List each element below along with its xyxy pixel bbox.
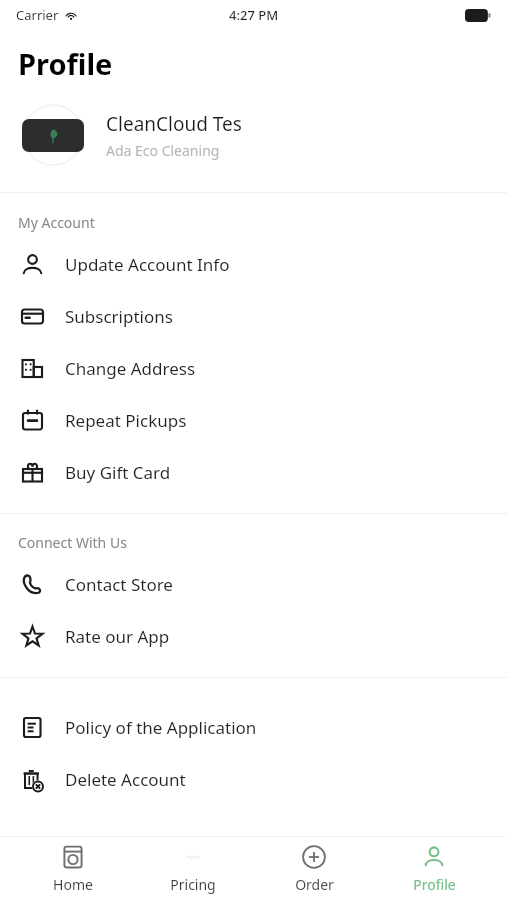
button[interactable]: Home [25, 840, 121, 898]
button[interactable]: Update Account Info [0, 238, 507, 290]
staticText: Order [295, 875, 334, 894]
staticText: Delete Account [65, 768, 186, 791]
staticText: Profile [413, 875, 456, 894]
button[interactable]: Delete Account [0, 753, 507, 805]
button[interactable]: Buy Gift Card [0, 446, 507, 498]
staticText: Repeat Pickups [65, 409, 187, 432]
button[interactable]: Order [266, 840, 362, 898]
button[interactable]: Pricing [145, 840, 241, 898]
button[interactable]: Contact Store [0, 558, 507, 610]
button[interactable]: Profile [386, 840, 482, 898]
staticText: CleanCloud Tes [106, 111, 242, 137]
staticText: Pricing [170, 875, 216, 894]
staticText: Buy Gift Card [65, 461, 171, 484]
staticText: Profile [18, 44, 113, 83]
staticText: Change Address [65, 357, 196, 380]
button[interactable]: Rate our App [0, 610, 507, 662]
staticText: Rate our App [65, 625, 170, 648]
button[interactable]: CleanCloud Tes [0, 96, 507, 174]
staticText: 4:27 PM [229, 6, 279, 24]
staticText: Contact Store [65, 573, 173, 596]
staticText: Carrier [16, 6, 59, 24]
staticText: Connect With Us [18, 533, 127, 552]
button[interactable]: Policy of the Application [0, 701, 507, 753]
staticText: Ada Eco Cleaning [106, 141, 220, 160]
button[interactable]: Repeat Pickups [0, 394, 507, 446]
staticText: Update Account Info [65, 253, 230, 276]
button[interactable]: Subscriptions [0, 290, 507, 342]
button[interactable]: Change Address [0, 342, 507, 394]
staticText: Subscriptions [65, 305, 173, 328]
staticText: Policy of the Application [65, 716, 257, 739]
staticText: Home [53, 875, 93, 894]
staticText: My Account [18, 213, 95, 232]
